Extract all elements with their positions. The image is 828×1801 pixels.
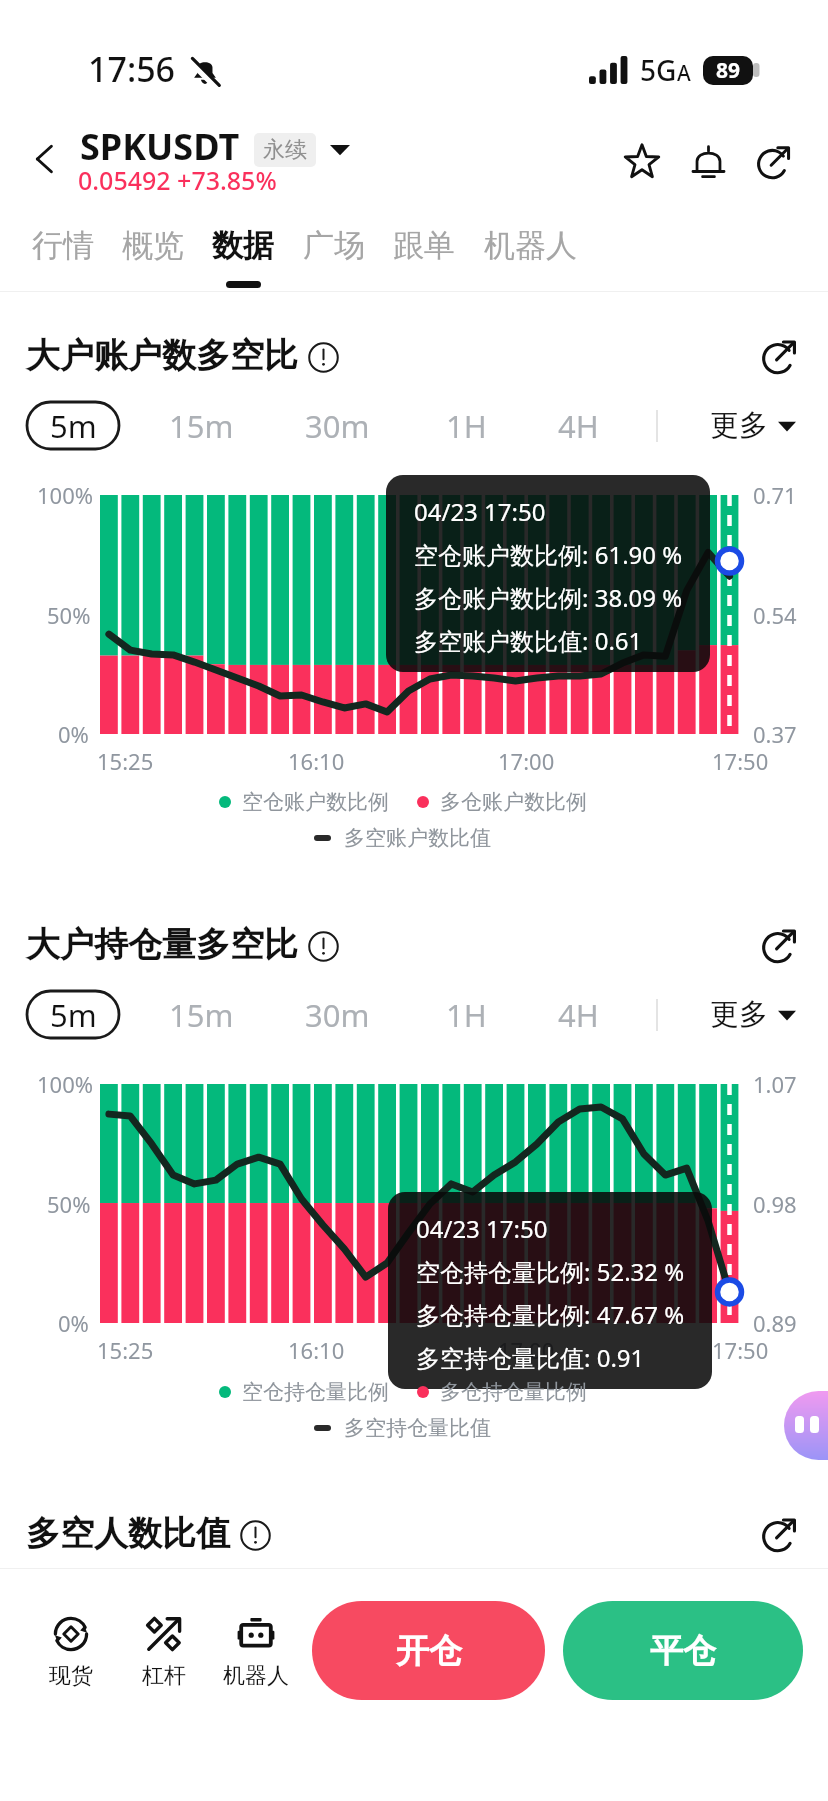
button[interactable]: Share bbox=[741, 128, 807, 194]
staticText: 5m bbox=[50, 405, 97, 447]
staticText: 杠杆 bbox=[142, 1662, 186, 1690]
staticText: 15m bbox=[169, 994, 234, 1036]
staticText: 广场 bbox=[303, 226, 365, 265]
staticText: 1H bbox=[446, 994, 487, 1036]
button[interactable]: 更多 bbox=[710, 402, 796, 449]
staticText: 概览 bbox=[122, 226, 184, 265]
button[interactable]: 30m bbox=[305, 402, 370, 449]
staticText: 50% bbox=[47, 600, 91, 630]
staticText: 15:25 bbox=[97, 746, 154, 776]
button[interactable]: 5m bbox=[27, 402, 119, 449]
button[interactable]: Favorite bbox=[609, 128, 675, 194]
staticText: 0.54 bbox=[753, 600, 797, 630]
staticText: 100% bbox=[37, 480, 94, 510]
staticText: 多空持仓量比值 bbox=[344, 1415, 491, 1441]
staticText: 0% bbox=[58, 1308, 89, 1338]
staticText: 100% bbox=[37, 1069, 94, 1099]
staticText: 1H bbox=[446, 405, 487, 447]
staticText: 行情 bbox=[32, 226, 94, 265]
staticText: 30m bbox=[305, 994, 370, 1036]
staticText: 0.98 bbox=[753, 1189, 797, 1219]
staticText: 0.37 bbox=[753, 719, 797, 749]
staticText: 现货 bbox=[49, 1662, 93, 1690]
staticText: 空仓账户数比例 bbox=[242, 789, 389, 815]
staticText: 永续 bbox=[263, 136, 307, 164]
button[interactable]: Open detail bbox=[752, 328, 808, 384]
staticText: 04/23 17:50 bbox=[416, 1212, 548, 1245]
staticText: 0.71 bbox=[753, 480, 797, 510]
staticText: 15:25 bbox=[97, 1335, 154, 1365]
staticText: 17:56 bbox=[88, 46, 176, 92]
button[interactable]: Alerts bbox=[675, 128, 741, 194]
button[interactable]: 15m bbox=[169, 402, 234, 449]
staticText: 5m bbox=[50, 994, 97, 1036]
button[interactable]: 广场 bbox=[289, 226, 379, 292]
button[interactable]: 5m bbox=[27, 991, 119, 1038]
button[interactable]: 4H bbox=[558, 991, 599, 1038]
staticText: 16:10 bbox=[288, 746, 345, 776]
button[interactable]: 杠杆 bbox=[114, 1614, 214, 1690]
staticText: 多空账户数比值: 0.61 bbox=[414, 624, 643, 657]
button[interactable]: 4H bbox=[558, 402, 599, 449]
staticText: 多空持仓量比值: 0.91 bbox=[416, 1341, 645, 1374]
button[interactable]: 跟单 bbox=[379, 226, 469, 292]
staticText: 大户账户数多空比 bbox=[26, 334, 298, 377]
button[interactable]: 30m bbox=[305, 991, 370, 1038]
staticText: 50% bbox=[47, 1189, 91, 1219]
staticText: 大户持仓量多空比 bbox=[26, 923, 298, 966]
staticText: 17:00 bbox=[498, 1335, 555, 1365]
staticText: 4H bbox=[558, 994, 599, 1036]
staticText: 0% bbox=[58, 719, 89, 749]
staticText: 机器人 bbox=[223, 1662, 289, 1690]
staticText: 1.07 bbox=[753, 1069, 797, 1099]
staticText: 多仓持仓量比例 bbox=[440, 1379, 587, 1405]
staticText: 0.05492 +73.85% bbox=[78, 163, 277, 197]
staticText: SPKUSDT bbox=[80, 122, 240, 171]
button[interactable]: 数据 bbox=[198, 226, 288, 292]
button[interactable]: Back bbox=[14, 128, 76, 190]
staticText: 多仓持仓量比例: 47.67 % bbox=[416, 1298, 685, 1331]
staticText: 更多 bbox=[710, 996, 768, 1033]
button[interactable]: 1H bbox=[446, 991, 487, 1038]
staticText: 空仓持仓量比例: 52.32 % bbox=[416, 1255, 685, 1288]
staticText: 跟单 bbox=[393, 226, 455, 265]
staticText: 平仓 bbox=[650, 1630, 716, 1672]
staticText: 0.89 bbox=[753, 1308, 797, 1338]
staticText: 机器人 bbox=[484, 226, 577, 265]
staticText: 多空账户数比值 bbox=[344, 825, 491, 851]
button[interactable]: 现货 bbox=[21, 1614, 121, 1690]
button[interactable]: 15m bbox=[169, 991, 234, 1038]
button[interactable]: 机器人 bbox=[206, 1614, 306, 1690]
staticText: 15m bbox=[169, 405, 234, 447]
staticText: 5G bbox=[640, 51, 677, 89]
staticText: 16:10 bbox=[288, 1335, 345, 1365]
staticText: 更多 bbox=[710, 407, 768, 444]
staticText: 4H bbox=[558, 405, 599, 447]
staticText: 空仓账户数比例: 61.90 % bbox=[414, 538, 683, 571]
button[interactable]: Open detail bbox=[752, 1506, 808, 1562]
staticText: 多仓账户数比例: 38.09 % bbox=[414, 581, 683, 614]
staticText: 89 bbox=[716, 56, 741, 85]
button[interactable]: 行情 bbox=[18, 226, 108, 292]
staticText: 04/23 17:50 bbox=[414, 495, 546, 528]
staticText: 多空人数比值 bbox=[26, 1512, 230, 1555]
button[interactable]: Open detail bbox=[752, 917, 808, 973]
button[interactable]: AI assistant bbox=[784, 1391, 828, 1460]
staticText: 17:50 bbox=[712, 1335, 769, 1365]
button[interactable]: 1H bbox=[446, 402, 487, 449]
staticText: 开仓 bbox=[396, 1630, 462, 1672]
staticText: 数据 bbox=[212, 226, 274, 265]
staticText: 17:00 bbox=[498, 746, 555, 776]
button[interactable]: 概览 bbox=[108, 226, 198, 292]
button[interactable]: 更多 bbox=[710, 991, 796, 1038]
staticText: 多仓账户数比例 bbox=[440, 789, 587, 815]
staticText: 30m bbox=[305, 405, 370, 447]
staticText: A bbox=[677, 59, 691, 88]
button[interactable]: 平仓 bbox=[563, 1601, 803, 1700]
button[interactable]: 机器人 bbox=[470, 226, 591, 292]
staticText: 17:50 bbox=[712, 746, 769, 776]
staticText: 空仓持仓量比例 bbox=[242, 1379, 389, 1405]
button[interactable]: 开仓 bbox=[312, 1601, 545, 1700]
